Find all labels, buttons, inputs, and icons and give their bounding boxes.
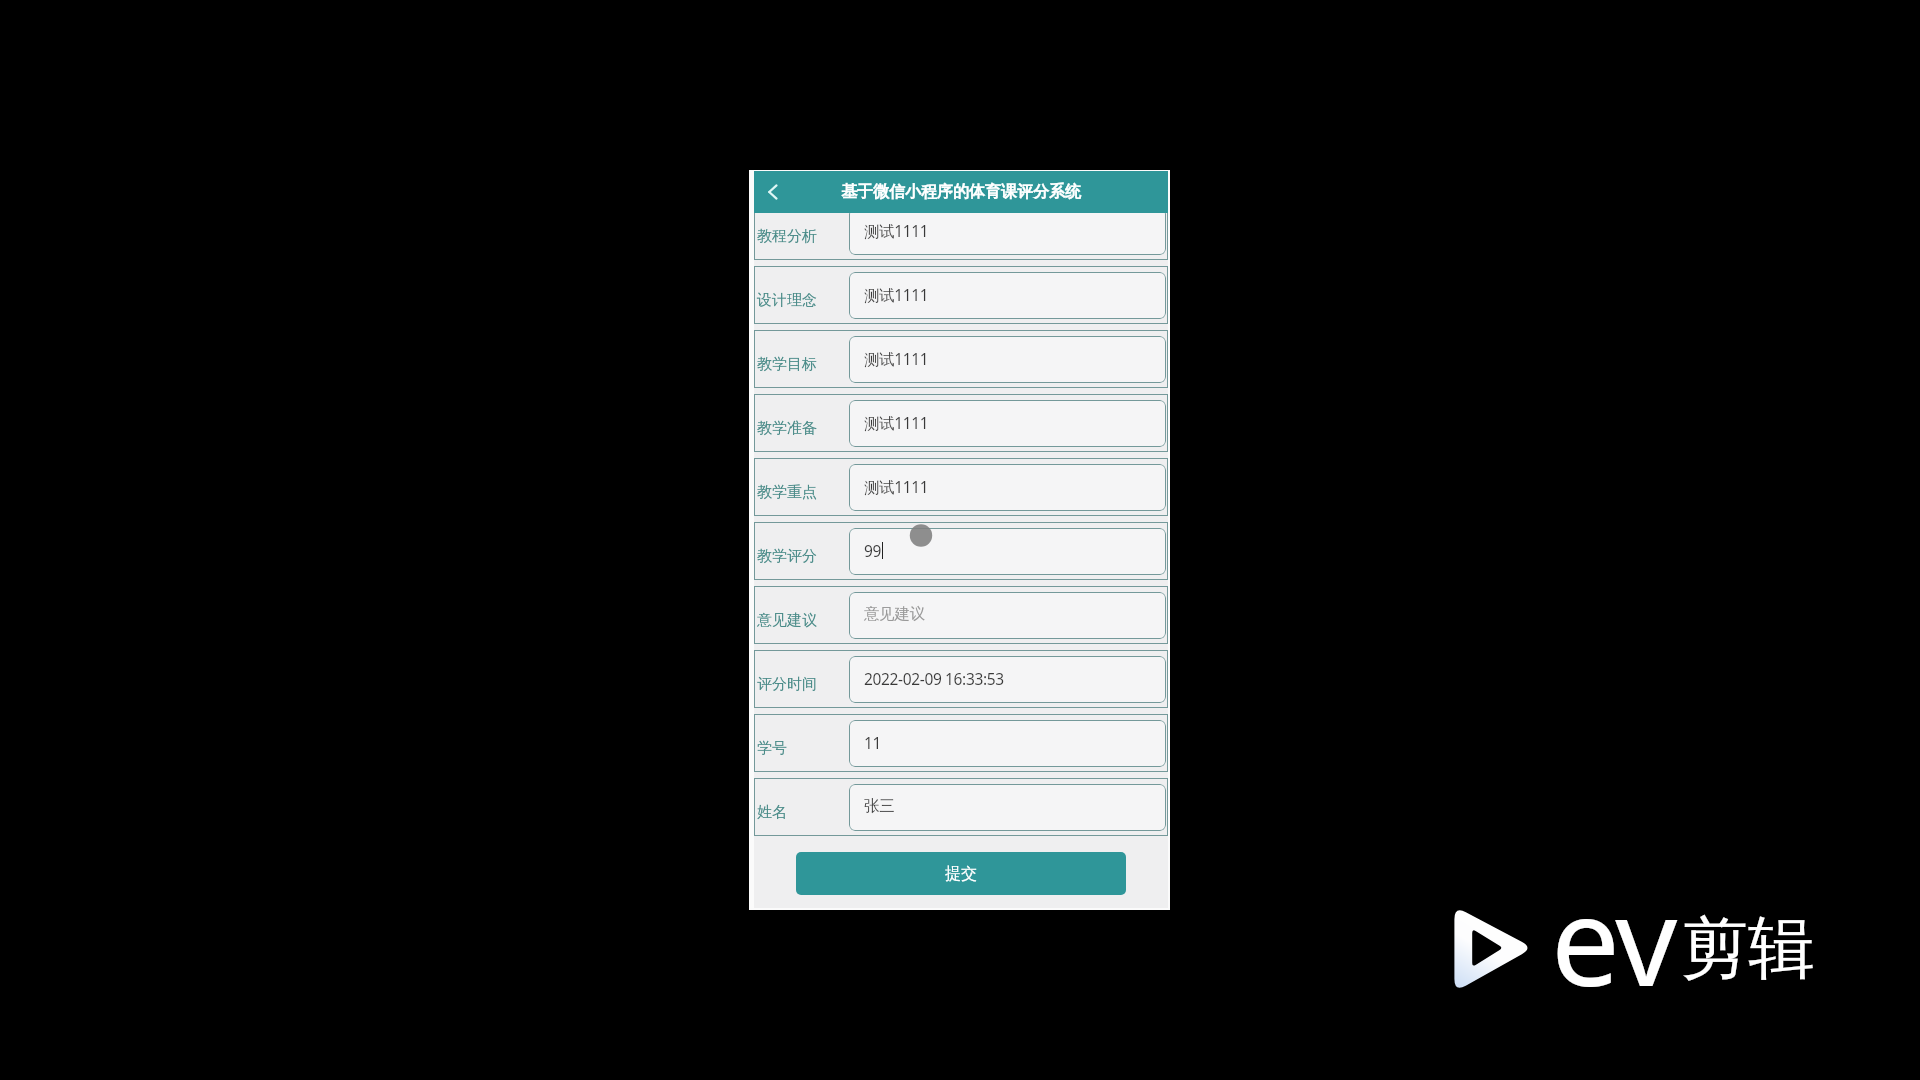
button[interactable]: 设计理念 <box>754 266 1168 324</box>
button[interactable]: Back <box>754 171 794 213</box>
staticText: 剪辑 <box>1681 906 1815 990</box>
button[interactable]: 99 <box>849 528 1166 575</box>
staticText: 基于微信小程序的体育课评分系统 <box>841 182 1081 202</box>
button[interactable]: 教学评分 <box>754 522 1168 580</box>
button[interactable]: 意见建议 <box>849 592 1166 639</box>
staticText: 教程分析 <box>757 227 817 246</box>
staticText: 教学重点 <box>757 483 817 502</box>
staticText: 测试1111 <box>864 348 929 369</box>
button[interactable]: 张三 <box>849 784 1166 831</box>
button[interactable]: 11 <box>849 720 1166 767</box>
button[interactable]: 测试1111 <box>849 336 1166 383</box>
button[interactable]: 教程分析 <box>754 202 1168 260</box>
staticText: 测试1111 <box>864 284 929 305</box>
staticText: 11 <box>864 732 882 753</box>
staticText: 张三 <box>864 796 895 816</box>
staticText: 教学目标 <box>757 355 817 374</box>
staticText: 姓名 <box>757 803 787 822</box>
button[interactable]: 教学目标 <box>754 330 1168 388</box>
button[interactable]: 测试1111 <box>849 208 1166 255</box>
button[interactable]: 2022-02-09 16:33:53 <box>849 656 1166 703</box>
staticText: 设计理念 <box>757 291 817 310</box>
button[interactable]: 评分时间 <box>754 650 1168 708</box>
button[interactable]: 教学重点 <box>754 458 1168 516</box>
button[interactable]: 意见建议 <box>754 586 1168 644</box>
button[interactable]: 测试1111 <box>849 400 1166 447</box>
staticText: 学号 <box>757 739 787 758</box>
staticText: 测试1111 <box>864 412 929 433</box>
button[interactable]: 提交 <box>796 852 1126 895</box>
staticText: 提交 <box>945 864 977 884</box>
button[interactable]: 测试1111 <box>849 272 1166 319</box>
staticText: 99 <box>864 540 882 561</box>
staticText: 意见建议 <box>757 611 817 630</box>
staticText: 教学评分 <box>757 547 817 566</box>
staticText: 教学准备 <box>757 419 817 438</box>
staticText: ev <box>1551 856 1676 1022</box>
staticText: 2022-02-09 16:33:53 <box>864 668 1004 689</box>
button[interactable]: 教学准备 <box>754 394 1168 452</box>
staticText: 评分时间 <box>757 675 817 694</box>
button[interactable]: 姓名 <box>754 778 1168 836</box>
staticText: 意见建议 <box>864 604 925 624</box>
button[interactable]: 测试1111 <box>849 464 1166 511</box>
staticText: 测试1111 <box>864 476 929 497</box>
staticText: 测试1111 <box>864 220 929 241</box>
button[interactable]: 学号 <box>754 714 1168 772</box>
